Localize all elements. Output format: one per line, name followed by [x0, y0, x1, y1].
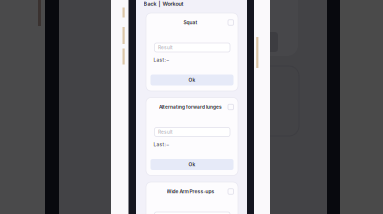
button[interactable]: Ok: [150, 74, 233, 85]
staticText: Ok: [188, 162, 195, 167]
staticText: Last: –: [153, 57, 168, 63]
staticText: Last: –: [153, 141, 168, 147]
button[interactable]: Mark Squat complete: [228, 20, 233, 25]
button[interactable]: Mark Alternating forward lunges complete: [228, 104, 233, 110]
button[interactable]: Ok: [150, 159, 233, 170]
staticText: Result: [158, 45, 173, 50]
staticText: Result: [158, 129, 173, 135]
staticText: Wide Arm Press-ups: [166, 189, 214, 194]
staticText: Squat: [183, 20, 197, 25]
staticText: Ok: [188, 77, 195, 83]
staticText: Alternating forward lunges: [159, 104, 222, 110]
button[interactable]: Mark Wide Arm Press-ups complete: [228, 189, 233, 194]
staticText: Back | Workout: [143, 0, 183, 7]
button[interactable]: Back | Workout: [143, 0, 183, 7]
